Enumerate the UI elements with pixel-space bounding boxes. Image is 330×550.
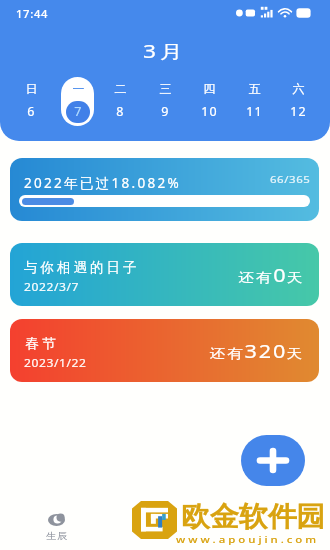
staticText: 2022/3/7 xyxy=(24,279,79,294)
staticText: 生辰 xyxy=(46,530,69,541)
button[interactable]: 五 xyxy=(232,77,277,126)
staticText: 一 xyxy=(56,81,101,96)
staticText: 8 xyxy=(98,103,143,120)
button[interactable]: 三 xyxy=(143,77,188,126)
staticText: 11 xyxy=(232,103,277,120)
staticText: 三 xyxy=(143,81,188,96)
button[interactable]: 四 xyxy=(187,77,232,126)
staticText: 10 xyxy=(187,103,232,120)
staticText: 与你相遇的日子 xyxy=(24,259,140,276)
staticText: 3月 xyxy=(143,39,187,63)
button[interactable]: 二 xyxy=(98,77,143,126)
staticText: w w w . a p o u j i n . c o m xyxy=(176,534,318,545)
button[interactable]: 日 xyxy=(9,77,54,126)
staticText: 还有320天 xyxy=(209,339,303,364)
button[interactable]: 生辰 xyxy=(36,514,76,541)
staticText: 二 xyxy=(98,81,143,96)
staticText: 12 xyxy=(276,103,321,120)
staticText: 欧金软件园 xyxy=(181,500,326,535)
staticText: 17:44 xyxy=(16,7,48,21)
button[interactable]: 一 xyxy=(54,77,99,126)
staticText: 2023/1/22 xyxy=(24,355,87,370)
staticText: 六 xyxy=(276,81,321,96)
staticText: 7 xyxy=(56,103,101,120)
button[interactable]: 与你相遇的日子 xyxy=(10,243,319,306)
button[interactable]: 2022年已过18.082% xyxy=(10,158,319,221)
button[interactable]: 春节 xyxy=(10,319,319,382)
button[interactable]: Add countdown xyxy=(241,435,305,486)
staticText: 6 xyxy=(9,103,54,120)
staticText: 春节 xyxy=(24,335,57,352)
staticText: 66/365 xyxy=(270,173,311,186)
staticText: 五 xyxy=(232,81,277,96)
button[interactable]: 六 xyxy=(276,77,321,126)
staticText: 日 xyxy=(9,81,54,96)
staticText: 2022年已过18.082% xyxy=(24,174,182,192)
staticText: 9 xyxy=(143,103,188,120)
staticText: 四 xyxy=(187,81,232,96)
staticText: 还有0天 xyxy=(238,263,303,288)
